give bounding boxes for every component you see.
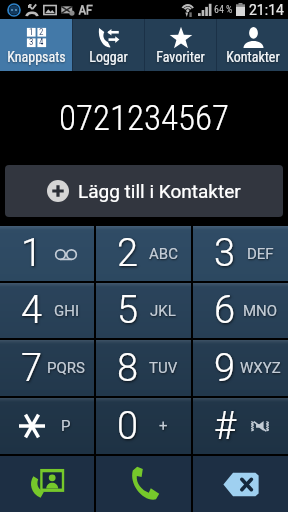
button[interactable]: 5 [96,283,191,338]
staticText: P [61,417,71,435]
staticText: 2 [117,231,139,276]
staticText: TUV [149,359,178,377]
staticText: 8 [117,346,139,391]
staticText: Lägg till i Kontakter [78,180,241,202]
staticText: + [159,417,168,435]
staticText: Favoriter [156,49,205,65]
staticText: 4 [21,288,43,333]
button[interactable]: 7 [0,340,94,396]
button[interactable]: Favoriter [145,19,216,71]
button[interactable]: Loggar [73,19,144,71]
button[interactable]: Call [96,456,191,512]
button[interactable]: 4 [0,283,94,338]
button[interactable]: Kontakter [217,19,288,71]
staticText: PQRS [47,359,85,377]
button[interactable]: Add to contacts [0,456,94,512]
staticText: 4 [39,37,44,48]
staticText: 0721234567 [59,98,230,139]
staticText: MNO [243,302,278,320]
button[interactable]: 1 [0,19,72,71]
staticText: 3 [29,37,34,48]
staticText: 5 [117,288,139,333]
staticText: 0 [117,404,139,449]
button[interactable]: 1 [0,226,94,281]
button[interactable]: P [0,398,94,454]
button[interactable]: Backspace [193,456,288,512]
staticText: Kontakter [226,49,280,65]
staticText: WXYZ [240,359,281,377]
staticText: DEF [247,245,274,263]
staticText: 1 [29,27,34,37]
staticText: ABC [149,245,178,263]
button[interactable]: Lägg till i Kontakter [5,165,283,217]
staticText: 2 [39,27,44,37]
staticText: Loggar [89,49,128,65]
button[interactable]: 8 [96,340,191,396]
staticText: 9 [214,346,236,391]
button[interactable]: 3 [193,226,288,281]
button[interactable]: 2 [96,226,191,281]
staticText: 3 [214,231,236,276]
button[interactable]: 6 [193,283,288,338]
staticText: 64 [214,4,224,16]
staticText: 1 [21,231,43,276]
staticText: 7 [21,346,43,391]
staticText: 6 [214,288,236,333]
staticText: JKL [150,302,176,320]
staticText: 21:14 [249,2,284,18]
staticText: GHI [54,302,79,320]
staticText: Knappsats [7,49,66,65]
button[interactable]: 9 [193,340,288,396]
button[interactable]: 0 [96,398,191,454]
button[interactable]: # [193,398,288,454]
staticText: % [226,4,233,16]
staticText: # [214,404,237,449]
